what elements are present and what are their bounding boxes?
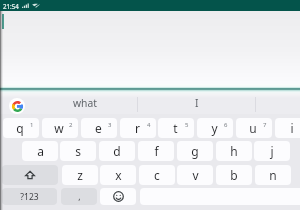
button[interactable]: u — [236, 118, 272, 138]
button[interactable]: h — [216, 141, 252, 161]
button[interactable]: Google search — [9, 98, 25, 114]
button[interactable]: q — [3, 118, 39, 138]
staticText: ?123 — [20, 191, 39, 203]
button[interactable]: x — [100, 165, 136, 185]
staticText: I — [195, 96, 199, 110]
button[interactable]: ?123 — [2, 188, 57, 205]
staticText: 2 — [69, 121, 73, 129]
button[interactable]: z — [62, 165, 98, 185]
staticText: e — [95, 120, 102, 136]
button[interactable]: r — [120, 118, 156, 138]
staticText: z — [77, 167, 83, 183]
staticText: s — [75, 143, 81, 159]
staticText: 5 — [185, 121, 189, 129]
button[interactable]: I — [138, 92, 255, 114]
button[interactable]: i — [275, 118, 300, 138]
staticText: t — [173, 120, 178, 136]
staticText: 21:54 — [3, 2, 19, 10]
staticText: 3 — [108, 121, 112, 129]
staticText: v — [192, 167, 199, 183]
staticText: j — [270, 143, 274, 159]
button[interactable]: , — [61, 188, 97, 205]
staticText: x — [115, 167, 122, 183]
staticText: 6 — [224, 121, 228, 129]
button[interactable]: d — [99, 141, 135, 161]
staticText: r — [135, 120, 140, 136]
staticText: a — [37, 143, 44, 159]
staticText: h — [230, 143, 238, 159]
staticText: w — [54, 120, 64, 136]
staticText: 7 — [263, 121, 267, 129]
button[interactable]: t — [158, 118, 194, 138]
button[interactable]: f — [138, 141, 174, 161]
staticText: y — [211, 120, 218, 136]
button[interactable]: Shift — [2, 165, 58, 185]
button[interactable]: n — [255, 165, 291, 185]
button[interactable]: Emoji — [100, 188, 136, 205]
button[interactable]: what — [29, 92, 140, 114]
staticText: c — [154, 167, 160, 183]
staticText: , — [78, 191, 81, 203]
button[interactable]: v — [177, 165, 213, 185]
staticText: 1 — [30, 121, 34, 129]
button[interactable]: a — [22, 141, 58, 161]
staticText: what — [73, 96, 97, 110]
staticText: n — [269, 167, 277, 183]
button[interactable]: e — [81, 118, 117, 138]
button[interactable]: j — [254, 141, 290, 161]
button[interactable]: b — [216, 165, 252, 185]
staticText: b — [230, 167, 238, 183]
staticText: 4 — [147, 121, 151, 129]
button[interactable]: s — [60, 141, 96, 161]
button[interactable]: c — [139, 165, 175, 185]
button[interactable]: y — [197, 118, 233, 138]
staticText: u — [249, 120, 257, 136]
staticText: q — [16, 120, 24, 136]
button[interactable] — [256, 92, 300, 114]
staticText: g — [191, 143, 199, 159]
staticText: f — [154, 143, 159, 159]
button[interactable]: g — [177, 141, 213, 161]
staticText: d — [113, 143, 121, 159]
button[interactable]: w — [42, 118, 78, 138]
staticText: i — [290, 120, 294, 136]
